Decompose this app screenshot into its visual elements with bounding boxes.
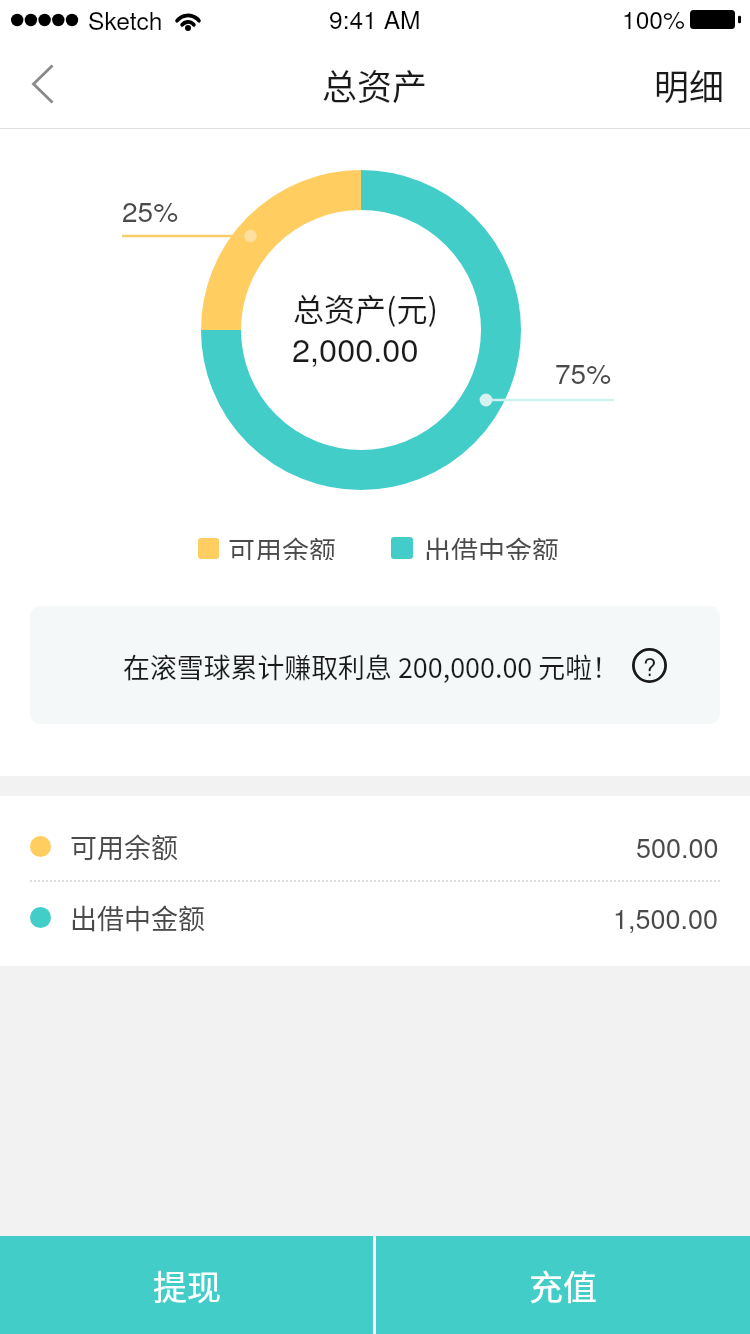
staticText: 在滚雪球累计赚取利息 200,000.00 元啦！ [123, 647, 619, 686]
button[interactable]: Back [0, 40, 84, 128]
staticText: 总资产 [322, 59, 428, 110]
staticText: 总资产(元) [293, 285, 438, 330]
button[interactable]: 可用余额 [30, 810, 719, 883]
staticText: 25% [122, 190, 179, 230]
staticText: 明细 [654, 59, 725, 110]
button[interactable]: 在滚雪球累计赚取利息 200,000.00 元啦！ [30, 606, 720, 724]
button[interactable]: 出借中金额 [30, 881, 719, 954]
staticText: Sketch [88, 2, 163, 37]
staticText: 可用余额 [228, 530, 336, 560]
button[interactable]: 充值 [376, 1236, 750, 1334]
staticText: 可用余额 [70, 827, 178, 866]
staticText: 100% [622, 1, 685, 36]
button[interactable]: 提现 [0, 1236, 373, 1334]
staticText: 2,000.00 [292, 325, 419, 372]
button[interactable]: 明细 [622, 40, 750, 128]
staticText: 500.00 [636, 827, 719, 866]
staticText: 提现 [153, 1261, 221, 1310]
staticText: 75% [555, 352, 612, 392]
staticText: 出借中金额 [70, 898, 205, 937]
staticText: 1,500.00 [613, 898, 719, 937]
staticText: ? [643, 648, 657, 682]
staticText: 充值 [529, 1261, 597, 1310]
staticText: 出借中金额 [424, 530, 559, 560]
staticText: 9:41 AM [329, 1, 421, 36]
